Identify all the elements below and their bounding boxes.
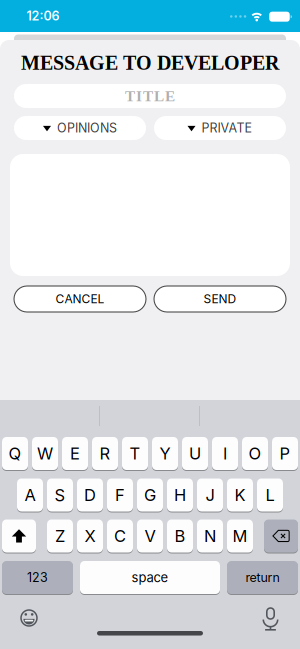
staticText: H [174,485,186,505]
staticText: A [24,485,35,505]
staticText: S [54,485,65,505]
staticText: O [248,443,261,463]
staticText: F [115,485,125,505]
staticText: OPINIONS [57,120,117,135]
button[interactable]: U [182,436,208,470]
staticText: T [129,443,140,463]
button[interactable]: Z [47,519,73,553]
button[interactable]: PRIVATE [154,116,286,140]
staticText: N [204,526,216,546]
button[interactable]: O [242,436,268,470]
staticText: D [84,485,96,505]
button[interactable]: P [272,436,298,470]
staticText: U [189,443,201,463]
button[interactable]: H [167,478,193,512]
button[interactable]: X [77,519,103,553]
button[interactable]: space [80,560,220,594]
button[interactable] [2,519,36,553]
staticText: TITLE [125,87,175,104]
button[interactable]: S [47,478,73,512]
button[interactable] [264,519,298,553]
button[interactable]: return [227,560,298,594]
staticText: J [205,485,214,505]
staticText: 123 [27,570,48,585]
button[interactable]: A [17,478,43,512]
staticText: Z [55,526,65,546]
button[interactable]: SEND [154,286,286,312]
staticText: Y [159,443,170,463]
button[interactable]: M [227,519,253,553]
button[interactable]: W [32,436,58,470]
staticText: W [37,443,53,463]
button[interactable]: T [122,436,148,470]
staticText: MESSAGE TO DEVELOPER [21,52,279,74]
staticText: V [144,526,155,546]
button[interactable]: Y [152,436,178,470]
button[interactable]: TITLE [14,84,286,108]
staticText: M [232,526,247,546]
button[interactable] [19,608,38,627]
button[interactable]: V [137,519,163,553]
button[interactable]: R [92,436,118,470]
button[interactable]: L [257,478,283,512]
button[interactable]: 123 [2,560,73,594]
button[interactable]: I [212,436,238,470]
button[interactable]: C [107,519,133,553]
staticText: I [223,443,227,463]
staticText: return [245,570,279,585]
staticText: R [99,443,110,463]
staticText: C [114,526,126,546]
button[interactable]: Q [2,436,28,470]
staticText: CANCEL [55,292,104,306]
button[interactable]: J [197,478,223,512]
button[interactable]: OPINIONS [14,116,146,140]
staticText: space [131,570,168,585]
staticText: B [174,526,185,546]
staticText: K [234,485,245,505]
button[interactable]: D [77,478,103,512]
staticText: SEND [203,292,236,306]
staticText: X [84,526,95,546]
staticText: E [70,443,80,463]
button[interactable]: F [107,478,133,512]
button[interactable]: B [167,519,193,553]
staticText: L [265,485,274,505]
staticText: PRIVATE [201,120,252,135]
button[interactable]: N [197,519,223,553]
button[interactable]: K [227,478,253,512]
button[interactable]: E [62,436,88,470]
staticText: P [279,443,290,463]
button[interactable]: CANCEL [14,286,146,312]
staticText: G [144,485,156,505]
staticText: Q [8,443,21,463]
button[interactable]: G [137,478,163,512]
button[interactable] [262,606,278,630]
staticText: 12:06 [26,8,59,23]
